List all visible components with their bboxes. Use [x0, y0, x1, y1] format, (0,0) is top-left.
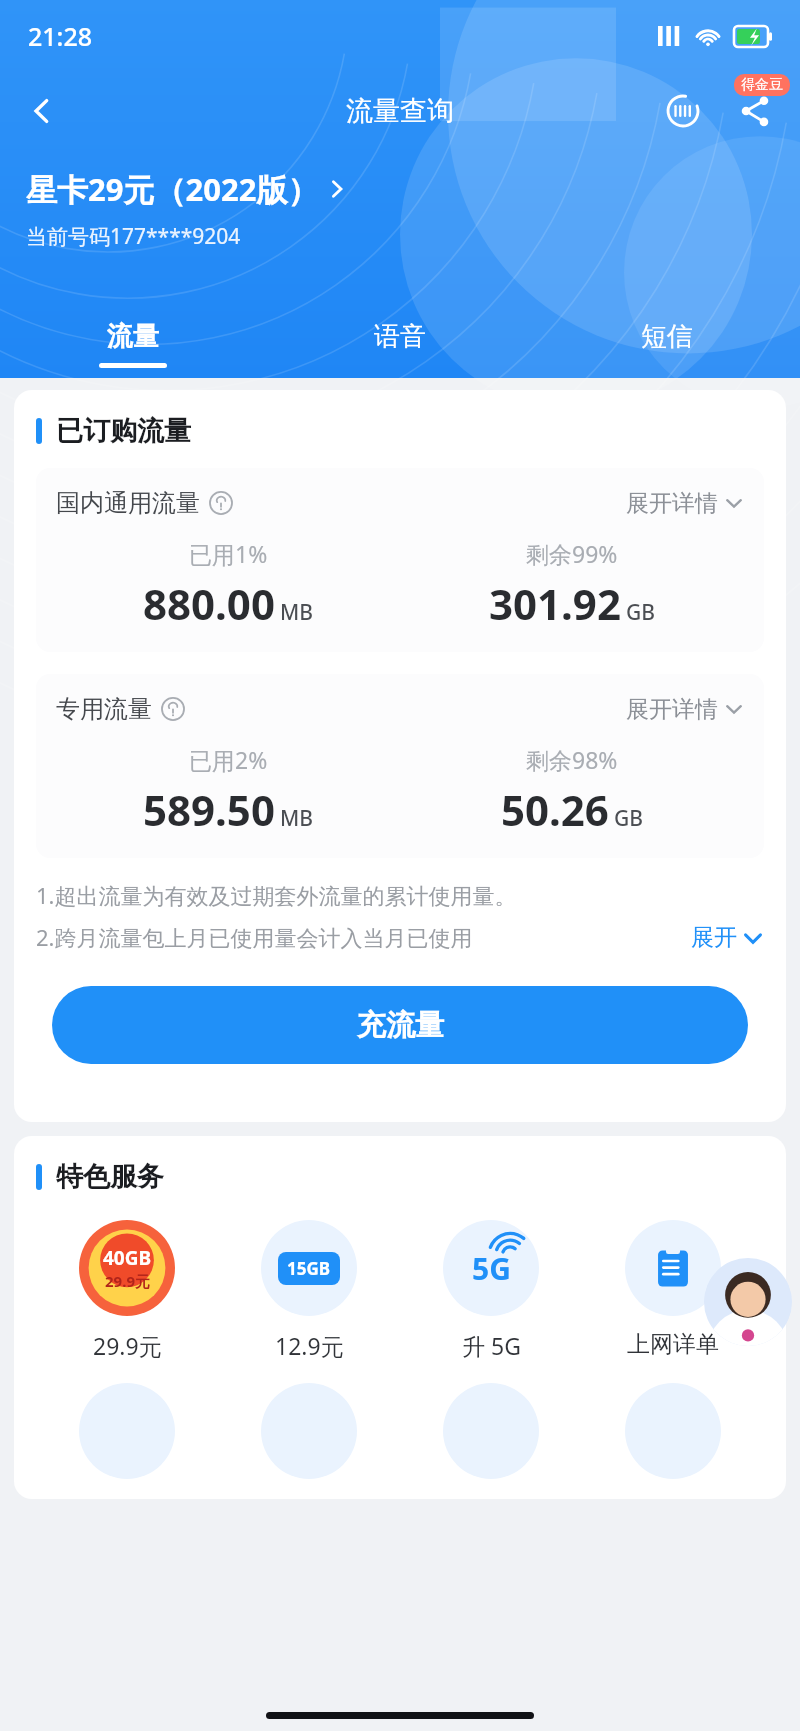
staticText: 专用流量: [56, 694, 152, 724]
staticText: 上网详单: [627, 1330, 719, 1359]
button[interactable]: Gold beans: [656, 84, 710, 138]
staticText: 21:28: [28, 19, 93, 53]
button[interactable]: 5G: [400, 1220, 582, 1361]
staticText: 展开: [691, 923, 737, 952]
staticText: 15GB: [287, 1257, 331, 1280]
staticText: 29.9元: [93, 1330, 162, 1361]
staticText: 流量: [107, 320, 159, 353]
staticText: 展开详情: [626, 489, 718, 518]
staticText: 得金豆: [741, 76, 783, 94]
staticText: 流量查询: [346, 94, 454, 128]
button[interactable]: 流量: [0, 320, 266, 368]
staticText: 特色服务: [56, 1160, 164, 1194]
staticText: 301.92: [489, 575, 621, 632]
button[interactable]: Share: [728, 84, 782, 138]
staticText: 剩余99%: [526, 538, 618, 569]
staticText: 充流量: [357, 1007, 444, 1044]
staticText: 当前号码177****9204: [26, 222, 241, 251]
staticText: 50.26: [501, 781, 609, 838]
button[interactable]: 上网详单: [582, 1220, 764, 1359]
button[interactable]: 展开: [691, 923, 764, 952]
staticText: 已用1%: [189, 538, 268, 569]
button[interactable]: 星卡29元（2022版）: [26, 168, 347, 210]
staticText: GB: [626, 598, 656, 627]
staticText: 已用2%: [189, 744, 268, 775]
staticText: 展开详情: [626, 695, 718, 724]
staticText: GB: [614, 804, 644, 833]
staticText: 40GB: [103, 1245, 152, 1271]
staticText: 短信: [641, 320, 693, 353]
button[interactable]: Online customer service: [704, 1258, 792, 1346]
staticText: MB: [280, 804, 314, 833]
staticText: 语音: [374, 320, 426, 353]
button[interactable]: Back: [14, 83, 70, 139]
staticText: 880.00: [143, 575, 275, 632]
staticText: MB: [280, 598, 314, 627]
staticText: 12.9元: [275, 1330, 344, 1361]
button[interactable]: 充流量: [52, 986, 748, 1064]
staticText: 589.50: [143, 781, 275, 838]
staticText: 2.跨月流量包上月已使用量会计入当月已使用: [36, 922, 473, 952]
staticText: 星卡29元（2022版）: [26, 168, 319, 210]
button[interactable]: 15GB: [218, 1220, 400, 1361]
staticText: 5G: [472, 1248, 511, 1289]
button[interactable]: 语音: [266, 320, 533, 368]
staticText: 1.超出流量为有效及过期套外流量的累计使用量。: [36, 880, 517, 910]
staticText: 已订购流量: [56, 414, 191, 448]
button[interactable]: 短信: [533, 320, 800, 368]
staticText: 升 5G: [462, 1330, 521, 1361]
button[interactable]: 专用流量: [56, 694, 744, 838]
staticText: 剩余98%: [526, 744, 618, 775]
staticText: 国内通用流量: [56, 488, 200, 518]
button[interactable]: 国内通用流量: [56, 488, 744, 632]
staticText: 29.9元: [105, 1271, 150, 1291]
button[interactable]: 40GB: [36, 1220, 218, 1361]
